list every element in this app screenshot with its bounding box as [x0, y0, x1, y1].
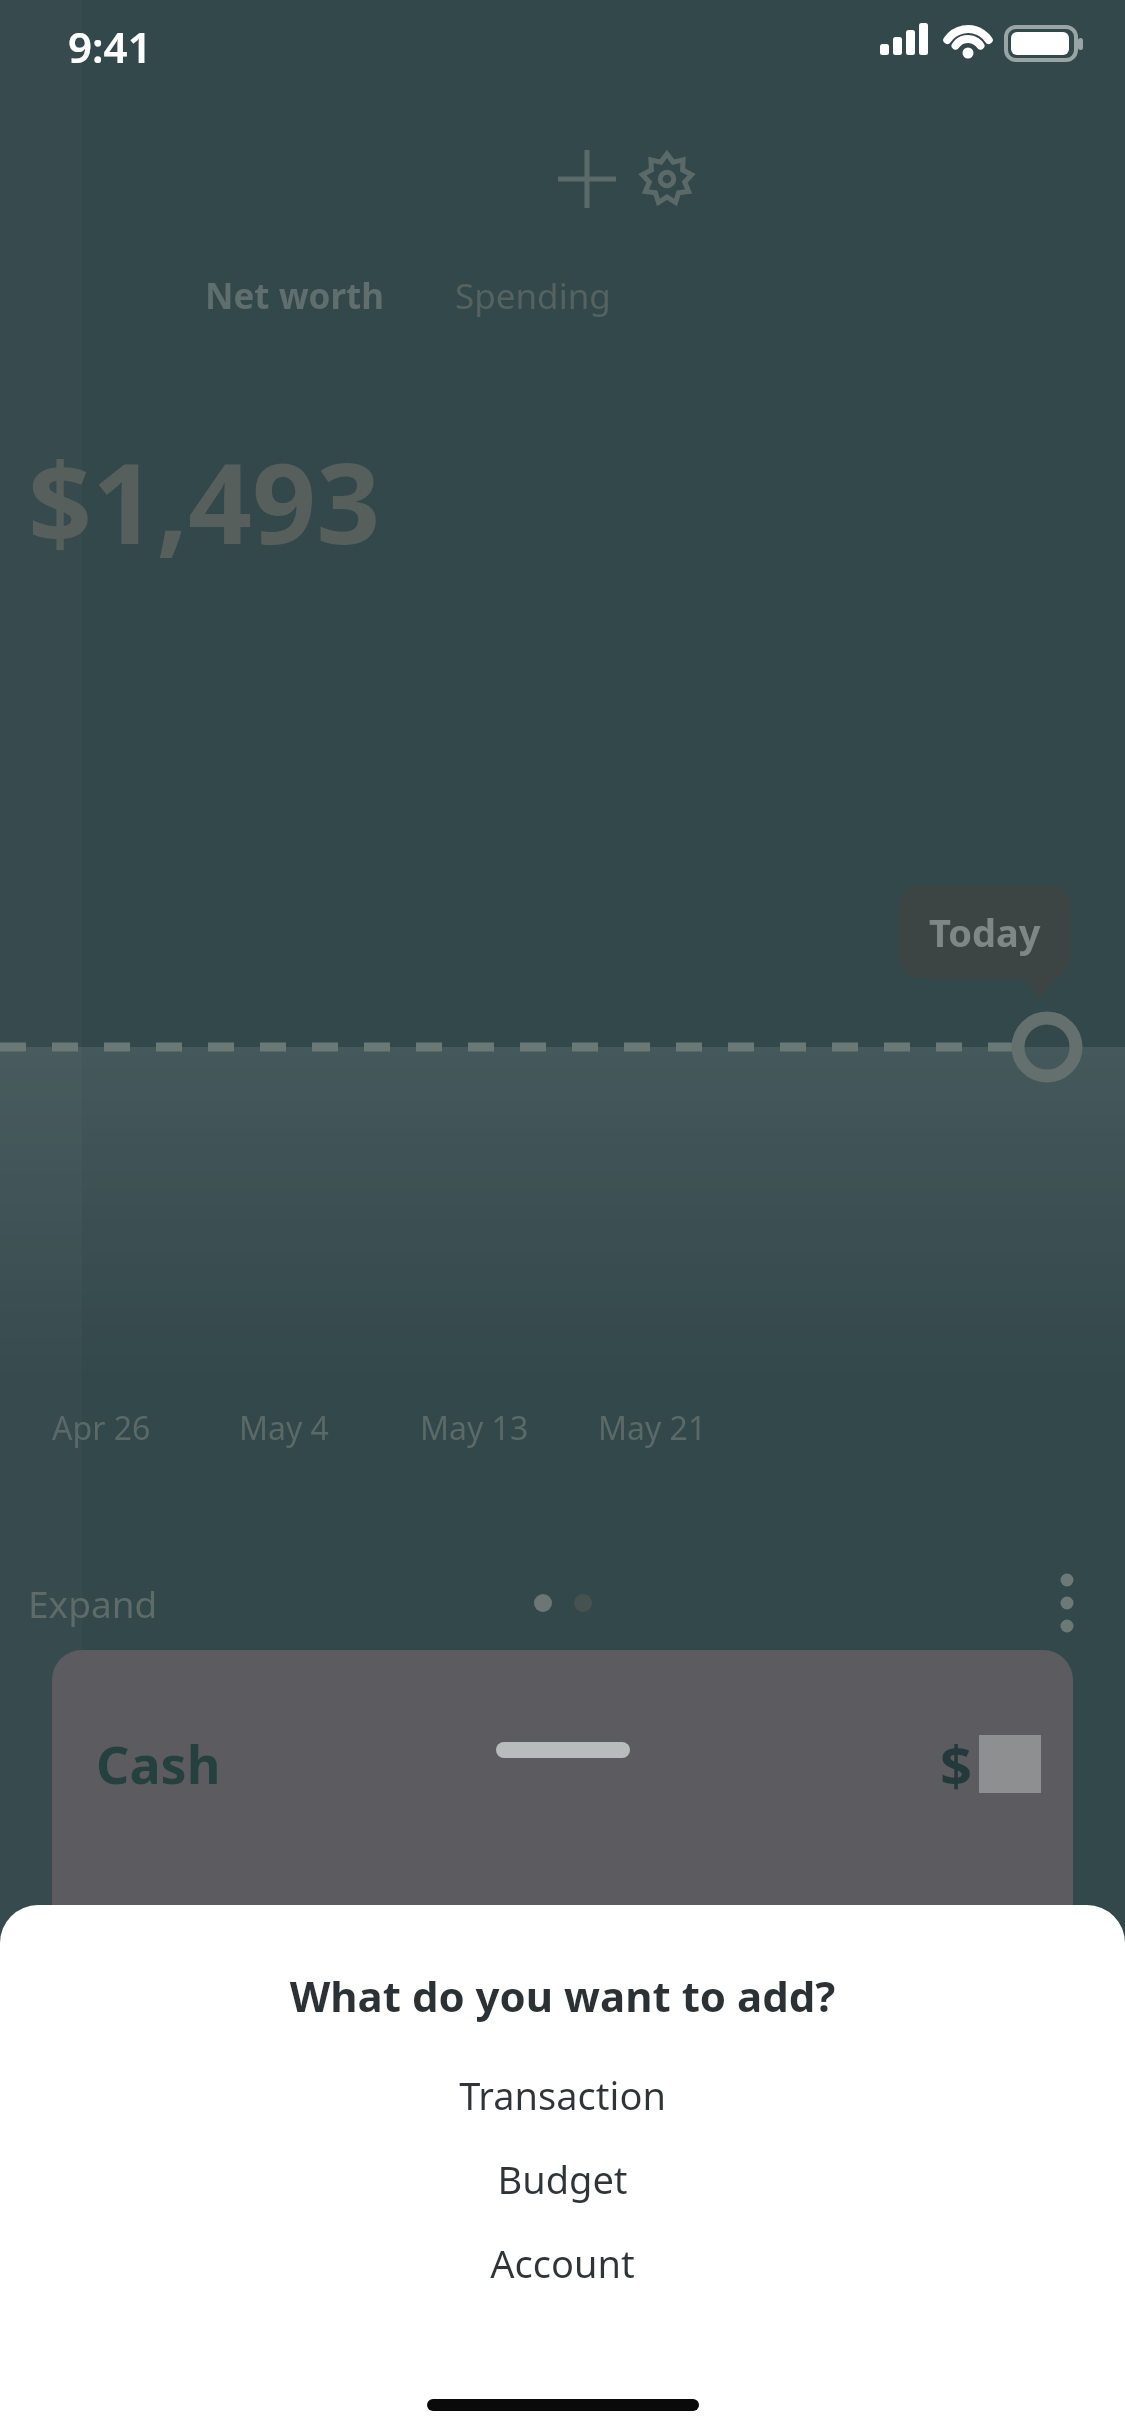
button[interactable]: Transaction	[0, 2062, 1125, 2128]
staticText: $1,493	[28, 424, 381, 577]
staticText: Account	[490, 2237, 635, 2289]
button[interactable]: Settings	[628, 140, 706, 218]
staticText: Net worth	[205, 272, 385, 320]
button[interactable]: More options	[1031, 1567, 1103, 1639]
button[interactable]: Cash	[52, 1650, 1073, 1950]
button[interactable]: Budget	[0, 2146, 1125, 2212]
staticText: Expand	[28, 1578, 158, 1628]
staticText: Cash	[96, 1728, 221, 1799]
staticText: 9:41	[68, 18, 152, 75]
staticText: May 13	[420, 1406, 529, 1450]
button[interactable]: Expand	[28, 1578, 158, 1628]
staticText: $	[940, 1726, 973, 1802]
staticText: May 21	[598, 1406, 707, 1450]
staticText: What do you want to add?	[0, 1967, 1125, 2024]
button[interactable]: Net worth	[205, 272, 385, 320]
button[interactable]: Spending	[455, 272, 611, 320]
staticText: Transaction	[459, 2069, 666, 2121]
staticText: Today	[929, 906, 1041, 958]
staticText: Budget	[497, 2153, 628, 2205]
button[interactable]: Add	[548, 140, 626, 218]
button[interactable]: Account	[0, 2230, 1125, 2296]
staticText: May 4	[239, 1406, 329, 1450]
staticText: Apr 26	[52, 1406, 151, 1450]
staticText: Spending	[455, 272, 611, 320]
